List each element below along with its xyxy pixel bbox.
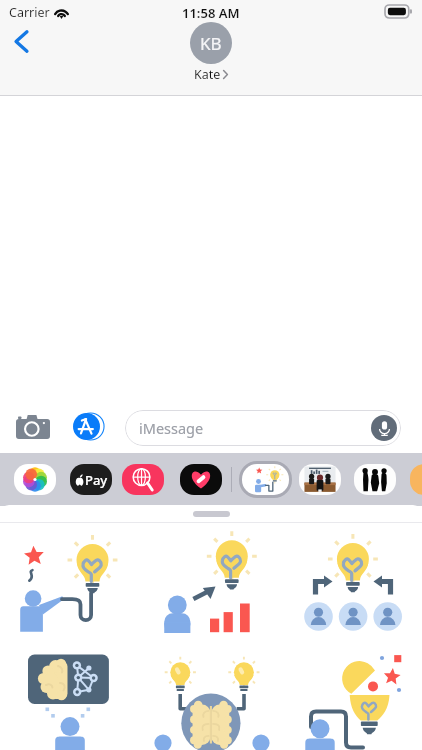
staticText: Kate <box>194 66 221 83</box>
button[interactable]: Apple Pay <box>70 464 112 495</box>
button[interactable]: Selected sticker pack <box>239 461 292 498</box>
staticText: Carrier <box>9 4 50 20</box>
button[interactable]: Camera <box>16 414 50 439</box>
button[interactable]: Dictate <box>371 415 397 441</box>
staticText: Pay <box>85 471 108 489</box>
button[interactable]: AI brain sticker <box>0 639 141 750</box>
button[interactable]: Back <box>4 26 38 56</box>
button[interactable]: Candle sticker <box>410 464 422 495</box>
button[interactable]: iMessage <box>125 410 401 446</box>
button[interactable]: Growth sticker <box>141 523 282 639</box>
button[interactable]: App Store <box>73 413 103 440</box>
button[interactable]: KB <box>190 22 232 83</box>
button[interactable]: Search <box>122 464 164 495</box>
button[interactable]: Team collaboration sticker <box>281 523 422 639</box>
button[interactable]: Photo sticker <box>299 464 341 495</box>
button[interactable]: Health <box>180 464 222 495</box>
button[interactable]: Drag handle <box>193 511 230 517</box>
staticText: 11:58 AM <box>182 4 240 20</box>
staticText: iMessage <box>139 418 204 438</box>
staticText: KB <box>200 32 222 55</box>
button[interactable]: People sticker <box>354 464 396 495</box>
button[interactable]: Photos <box>14 464 56 495</box>
button[interactable]: Idea sticker <box>0 523 141 639</box>
button[interactable]: Creative idea sticker <box>281 639 422 750</box>
button[interactable]: Brainstorm sticker <box>141 639 282 750</box>
